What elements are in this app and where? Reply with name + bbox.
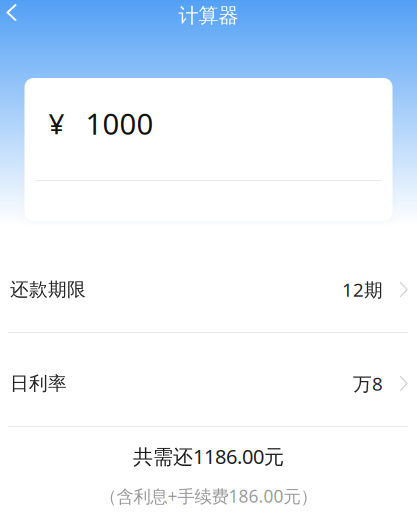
staticText: 1000 [85, 104, 153, 143]
staticText: ¥ [48, 105, 64, 142]
staticText: 共需还1186.00元 [133, 443, 284, 470]
button[interactable]: 日利率 [0, 333, 417, 426]
staticText: 还款期限 [10, 278, 86, 301]
staticText: （含利息+手续费186.00元） [99, 485, 317, 508]
staticText: 12期 [342, 277, 383, 302]
button[interactable]: Back [0, 0, 28, 30]
staticText: 计算器 [178, 3, 238, 28]
staticText: 日利率 [10, 372, 67, 395]
button[interactable]: ¥ [24, 78, 392, 221]
staticText: 万8 [353, 371, 383, 396]
button[interactable]: 还款期限 [0, 239, 417, 332]
